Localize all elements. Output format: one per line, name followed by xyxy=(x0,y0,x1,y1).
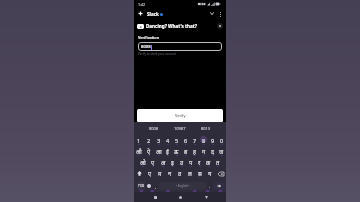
staticText: ग xyxy=(202,148,206,155)
staticText: . xyxy=(209,184,211,189)
button[interactable]: Home xyxy=(175,192,185,202)
staticText: 8013 xyxy=(201,126,211,131)
staticText: ए xyxy=(148,170,152,177)
staticText: Verification xyxy=(138,35,160,40)
staticText: उ xyxy=(180,159,184,166)
staticText: व xyxy=(178,170,182,177)
button[interactable]: Backspace xyxy=(215,168,226,179)
button[interactable]: 8008 xyxy=(138,42,222,51)
button[interactable]: ओ xyxy=(138,157,148,168)
staticText: त xyxy=(216,159,220,166)
button[interactable]: ग xyxy=(199,146,208,157)
button[interactable]: ए xyxy=(145,168,155,179)
button[interactable]: म xyxy=(155,168,165,179)
staticText: 9 xyxy=(211,137,215,144)
button[interactable]: 0 xyxy=(217,135,226,146)
staticText: ज xyxy=(219,148,224,155)
staticText: प xyxy=(189,159,193,166)
staticText: आ xyxy=(156,148,162,155)
staticText: 8008 xyxy=(141,44,151,50)
button[interactable]: प xyxy=(186,157,195,168)
button[interactable]: ए xyxy=(148,157,158,168)
button[interactable]: इ xyxy=(168,157,177,168)
staticText: Dancing? What's that? xyxy=(146,23,197,29)
staticText: ल xyxy=(188,170,192,177)
button[interactable]: Shift xyxy=(134,168,145,179)
button[interactable]: क xyxy=(204,157,213,168)
button[interactable]: आ xyxy=(154,146,163,157)
button[interactable]: अ xyxy=(158,157,168,168)
staticText: ऊ xyxy=(174,148,179,155)
button[interactable]: Close xyxy=(217,23,223,29)
button[interactable]: य xyxy=(205,168,215,179)
staticText: ऐ xyxy=(147,148,151,155)
staticText: 8008 xyxy=(149,126,159,131)
button[interactable]: र xyxy=(195,157,204,168)
staticText: ब xyxy=(184,148,188,155)
button[interactable]: Slack xyxy=(147,11,163,17)
staticText: 4 xyxy=(166,137,170,144)
button[interactable]: Emoji xyxy=(145,182,153,190)
staticText: 3 xyxy=(157,137,161,144)
button[interactable]: Add xyxy=(136,9,145,18)
button[interactable]: 4 xyxy=(163,135,172,146)
staticText: 1 xyxy=(137,137,141,144)
staticText: ई xyxy=(166,148,169,155)
button[interactable]: 3 xyxy=(154,135,163,146)
button[interactable]: ई xyxy=(163,146,172,157)
staticText: , xyxy=(155,184,157,189)
button[interactable]: More options xyxy=(216,10,224,18)
button[interactable]: ?123 xyxy=(137,182,145,190)
button[interactable]: उ xyxy=(177,157,186,168)
staticText: • English • xyxy=(176,184,190,188)
staticText: Verify xyxy=(175,113,186,118)
button[interactable]: Verify xyxy=(137,109,223,122)
button[interactable]: ऐ xyxy=(144,146,154,157)
button[interactable]: 9 xyxy=(208,135,217,146)
button[interactable]: 6 xyxy=(181,135,190,146)
staticText: अ xyxy=(161,159,166,166)
button[interactable]: . xyxy=(206,182,213,190)
button[interactable]: द xyxy=(208,146,217,157)
button[interactable]: औ xyxy=(134,146,144,157)
staticText: ?123 xyxy=(138,184,145,188)
staticText: 2 xyxy=(147,137,151,144)
button[interactable]: ह xyxy=(190,146,199,157)
button[interactable]: 7 xyxy=(190,135,199,146)
button[interactable]: ऊ xyxy=(172,146,181,157)
button[interactable]: 1 xyxy=(134,135,144,146)
button[interactable]: न xyxy=(165,168,175,179)
staticText: 8 xyxy=(202,137,206,144)
button[interactable]: स xyxy=(195,168,205,179)
button[interactable]: Expand xyxy=(207,9,216,18)
button[interactable]: 8 xyxy=(199,135,208,146)
staticText: स xyxy=(198,170,202,177)
staticText: 0 xyxy=(220,137,224,144)
button[interactable]: 8013 xyxy=(201,126,211,131)
staticText: 6 xyxy=(184,137,188,144)
button[interactable]: 5 xyxy=(172,135,181,146)
staticText: Verify to start your account xyxy=(138,52,177,56)
button[interactable]: , xyxy=(153,182,159,190)
staticText: ए xyxy=(151,159,155,166)
button[interactable]: Enter xyxy=(213,182,225,190)
button[interactable]: • English • xyxy=(159,182,206,190)
staticText: र xyxy=(198,159,201,166)
button[interactable]: व xyxy=(175,168,185,179)
button[interactable]: 10987 xyxy=(174,126,186,131)
staticText: 1:42 xyxy=(138,2,146,7)
button[interactable]: Back xyxy=(201,192,211,202)
staticText: 10987 xyxy=(174,126,186,131)
button[interactable]: 8008 xyxy=(149,126,159,131)
staticText: ह xyxy=(193,148,196,155)
button[interactable]: ल xyxy=(185,168,195,179)
staticText: इ xyxy=(171,159,174,166)
staticText: य xyxy=(208,170,212,177)
button[interactable]: Recents xyxy=(150,192,160,202)
button[interactable]: त xyxy=(213,157,222,168)
staticText: Slack xyxy=(147,11,159,17)
staticText: न xyxy=(168,170,172,177)
button[interactable]: 2 xyxy=(144,135,154,146)
button[interactable]: ब xyxy=(181,146,190,157)
button[interactable]: ज xyxy=(217,146,226,157)
